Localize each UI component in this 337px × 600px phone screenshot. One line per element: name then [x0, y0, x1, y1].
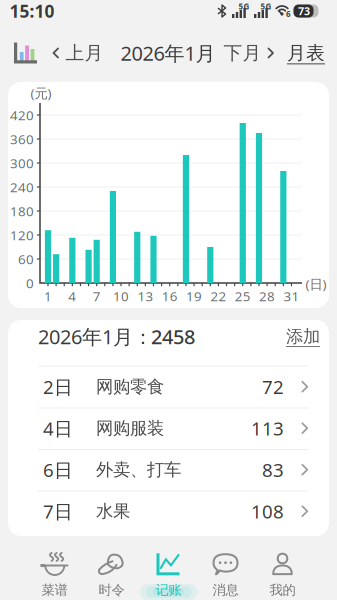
staticText: 73: [298, 4, 310, 18]
staticText: 180: [10, 202, 34, 220]
staticText: 2日: [43, 374, 73, 399]
staticText: 5G: [238, 1, 249, 12]
button[interactable]: 时令: [83, 547, 140, 600]
staticText: 7日: [43, 499, 73, 524]
staticText: 240: [10, 178, 34, 196]
staticText: 113: [251, 416, 284, 441]
staticText: 我的: [269, 582, 295, 598]
staticText: 16: [162, 287, 178, 305]
button[interactable]: 6日: [8, 449, 329, 490]
staticText: 下月: [223, 41, 261, 64]
staticText: 添加: [286, 326, 320, 347]
staticText: 83: [262, 457, 284, 482]
staticText: 28: [259, 287, 275, 305]
staticText: (日): [305, 275, 326, 293]
staticText: 420: [10, 106, 34, 124]
staticText: 水果: [96, 501, 130, 522]
staticText: 消息: [212, 582, 238, 598]
staticText: 6: [286, 9, 291, 19]
staticText: 2026年1月: [120, 40, 215, 66]
staticText: 60: [18, 250, 34, 268]
staticText: 上月: [65, 41, 103, 64]
button[interactable]: 菜谱: [26, 547, 83, 600]
staticText: 4: [68, 287, 76, 305]
staticText: 2458: [151, 323, 195, 350]
staticText: 15:10: [9, 0, 54, 22]
staticText: 120: [10, 226, 34, 244]
staticText: 31: [283, 287, 299, 305]
staticText: 2026年1月：: [38, 323, 153, 350]
staticText: 1: [44, 287, 52, 305]
staticText: 4日: [43, 416, 73, 441]
staticText: 菜谱: [41, 582, 67, 598]
staticText: 22: [210, 287, 226, 305]
staticText: (元): [30, 84, 51, 102]
staticText: 记账: [155, 582, 181, 598]
button[interactable]: 我的: [254, 547, 311, 600]
staticText: 7: [93, 287, 101, 305]
staticText: 19: [186, 287, 202, 305]
staticText: 月表: [287, 41, 325, 64]
staticText: 108: [251, 499, 284, 524]
staticText: 25: [235, 287, 251, 305]
staticText: 300: [10, 154, 34, 172]
staticText: 0: [26, 274, 34, 292]
staticText: 网购零食: [96, 376, 164, 397]
button[interactable]: 添加: [286, 322, 320, 350]
button[interactable]: 2日: [8, 366, 329, 407]
staticText: 10: [113, 287, 129, 305]
staticText: 13: [137, 287, 153, 305]
button[interactable]: 月表: [287, 37, 325, 69]
button[interactable]: 统计图表: [9, 37, 43, 69]
button[interactable]: 上月: [52, 37, 103, 69]
button[interactable]: 下月: [223, 37, 274, 69]
button[interactable]: 4日: [8, 407, 329, 449]
staticText: 6日: [43, 457, 73, 482]
staticText: 5G: [260, 1, 271, 12]
staticText: 网购服装: [96, 418, 164, 439]
button[interactable]: 记账: [140, 547, 197, 600]
staticText: 时令: [98, 582, 124, 598]
staticText: 外卖、打车: [96, 459, 181, 480]
staticText: 72: [262, 374, 284, 399]
staticText: 360: [10, 130, 34, 148]
button[interactable]: 消息: [197, 547, 254, 600]
button[interactable]: 7日: [8, 490, 329, 532]
